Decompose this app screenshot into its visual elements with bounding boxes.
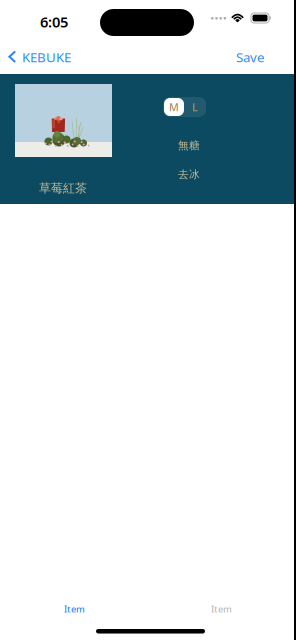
- button[interactable]: Item: [1, 569, 148, 618]
- staticText: L: [192, 100, 198, 114]
- staticText: Item: [64, 603, 85, 615]
- button[interactable]: L: [184, 97, 205, 117]
- staticText: 去冰: [178, 168, 200, 181]
- staticText: Save: [236, 48, 265, 66]
- staticText: 6:05: [40, 12, 68, 31]
- staticText: KEBUKE: [22, 48, 71, 66]
- staticText: M: [169, 100, 179, 114]
- staticText: 草莓紅茶: [39, 181, 87, 196]
- button[interactable]: Item: [148, 569, 295, 618]
- button[interactable]: KEBUKE: [0, 41, 79, 73]
- button[interactable]: M: [163, 97, 184, 117]
- staticText: 無糖: [178, 139, 200, 152]
- button[interactable]: Save: [226, 41, 275, 73]
- staticText: Item: [211, 603, 232, 615]
